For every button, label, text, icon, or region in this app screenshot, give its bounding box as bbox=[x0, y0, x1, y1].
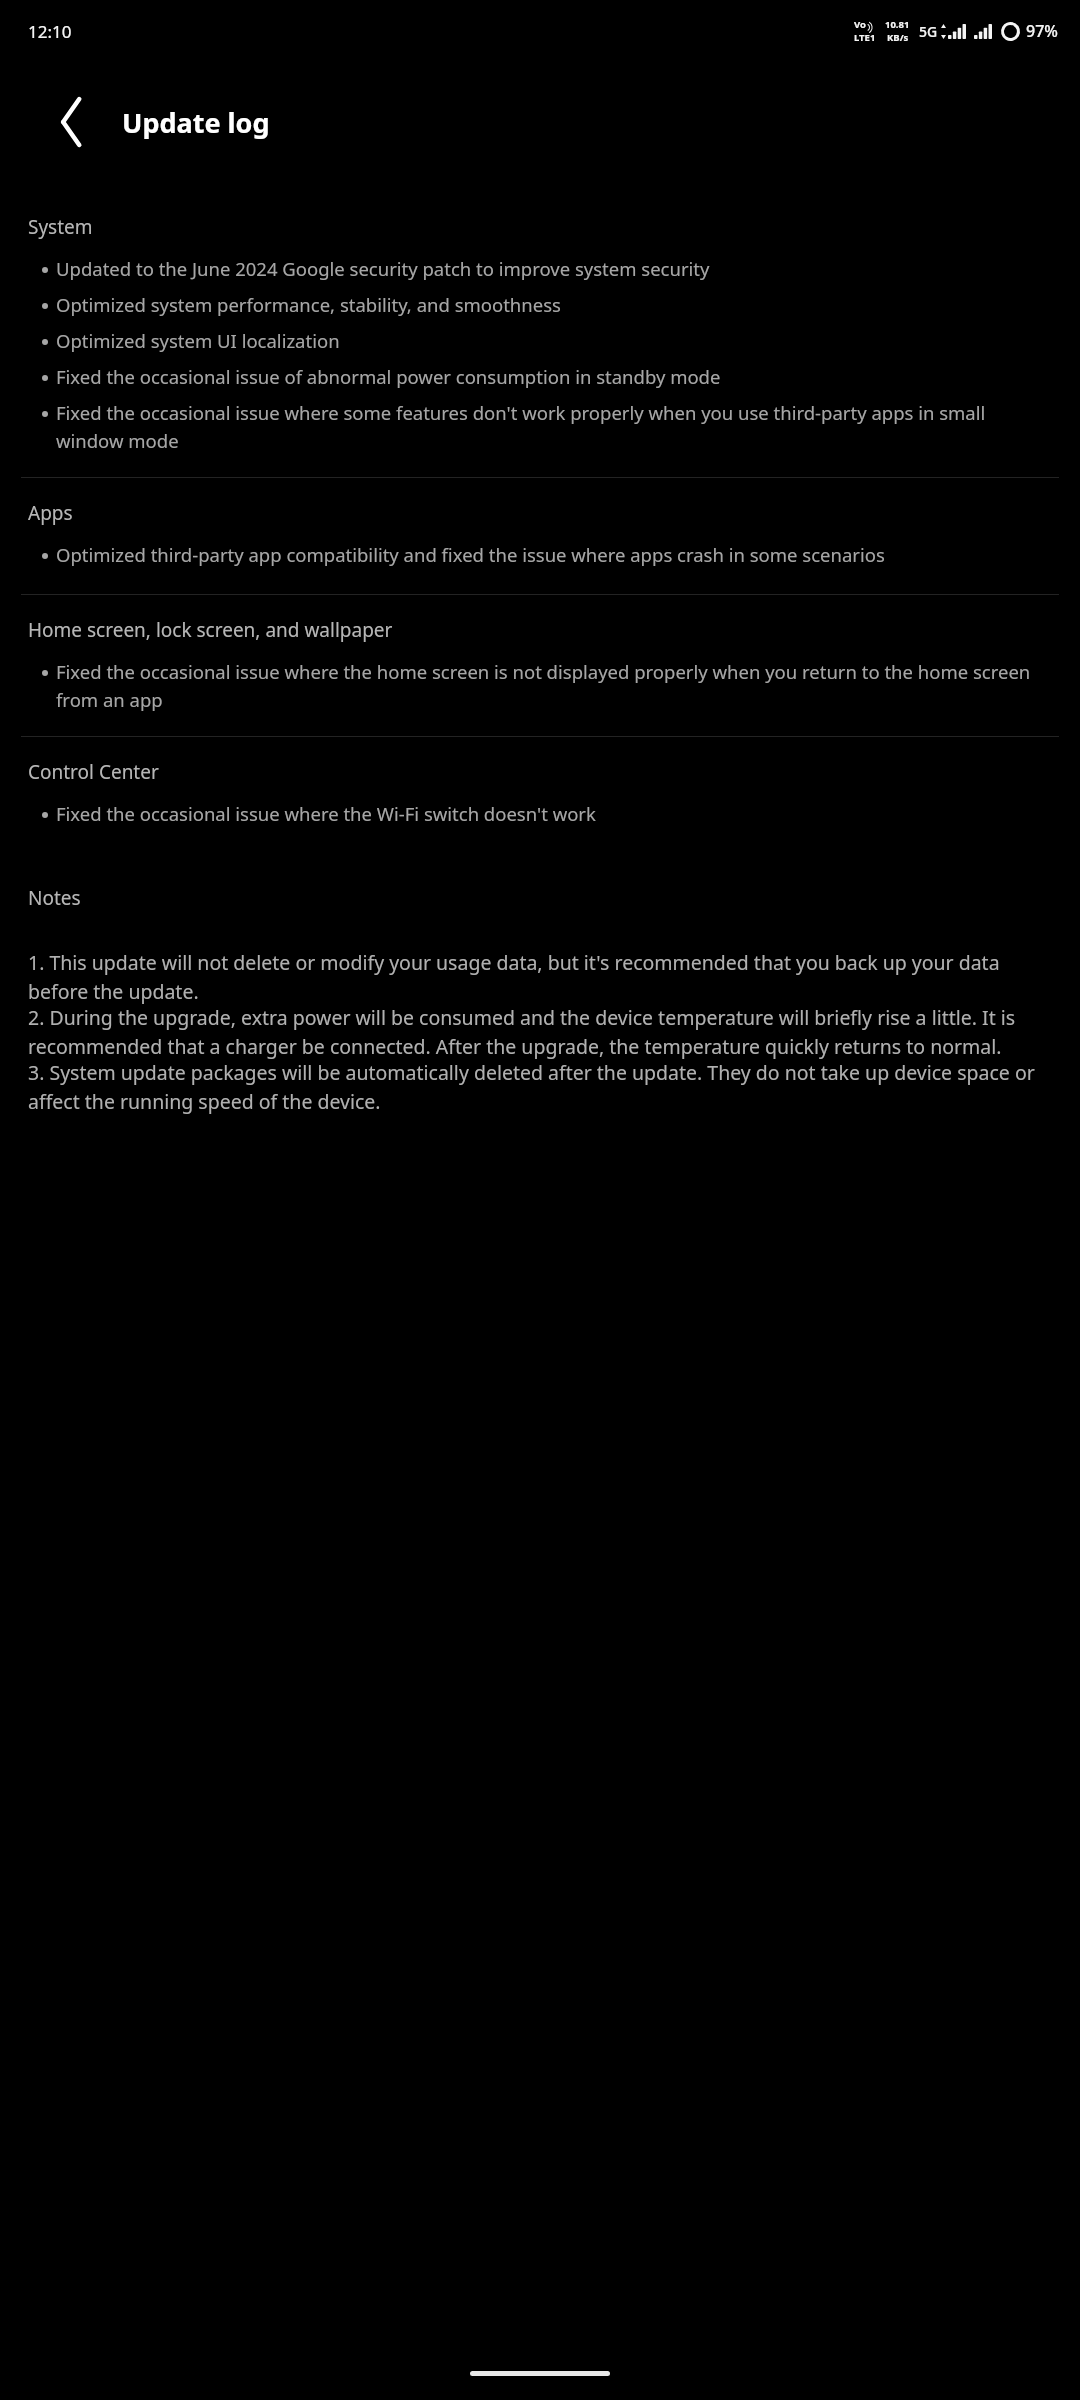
staticText: Fixed the occasional issue where some fe… bbox=[56, 400, 1048, 453]
staticText: Optimized system performance, stability,… bbox=[56, 292, 561, 317]
staticText: Apps bbox=[28, 500, 1052, 526]
staticText: 2. During the upgrade, extra power will … bbox=[28, 1004, 1052, 1059]
staticText: LTE1 bbox=[854, 31, 876, 44]
staticText: Home screen, lock screen, and wallpaper bbox=[28, 617, 1052, 643]
staticText: 3. System update packages will be automa… bbox=[28, 1059, 1052, 1114]
staticText: Optimized system UI localization bbox=[56, 328, 340, 353]
staticText: 1. This update will not delete or modify… bbox=[28, 949, 1052, 1004]
staticText: 10.81 bbox=[885, 18, 910, 31]
staticText: Vo bbox=[854, 18, 866, 31]
staticText: Optimized third-party app compatibility … bbox=[56, 542, 885, 567]
staticText: 5G bbox=[919, 22, 938, 41]
staticText: Fixed the occasional issue where the Wi-… bbox=[56, 801, 596, 826]
staticText: 12:10 bbox=[28, 20, 72, 43]
staticText: KB/s bbox=[887, 31, 909, 44]
staticText: Notes bbox=[28, 885, 1052, 911]
staticText: Updated to the June 2024 Google security… bbox=[56, 256, 710, 281]
button[interactable]: Back bbox=[40, 90, 104, 154]
staticText: Fixed the occasional issue where the hom… bbox=[56, 659, 1048, 712]
staticText: System bbox=[28, 214, 1052, 240]
staticText: Fixed the occasional issue of abnormal p… bbox=[56, 364, 721, 389]
staticText: Update log bbox=[122, 104, 270, 141]
staticText: 97% bbox=[1026, 20, 1058, 42]
staticText: Control Center bbox=[28, 759, 1052, 785]
